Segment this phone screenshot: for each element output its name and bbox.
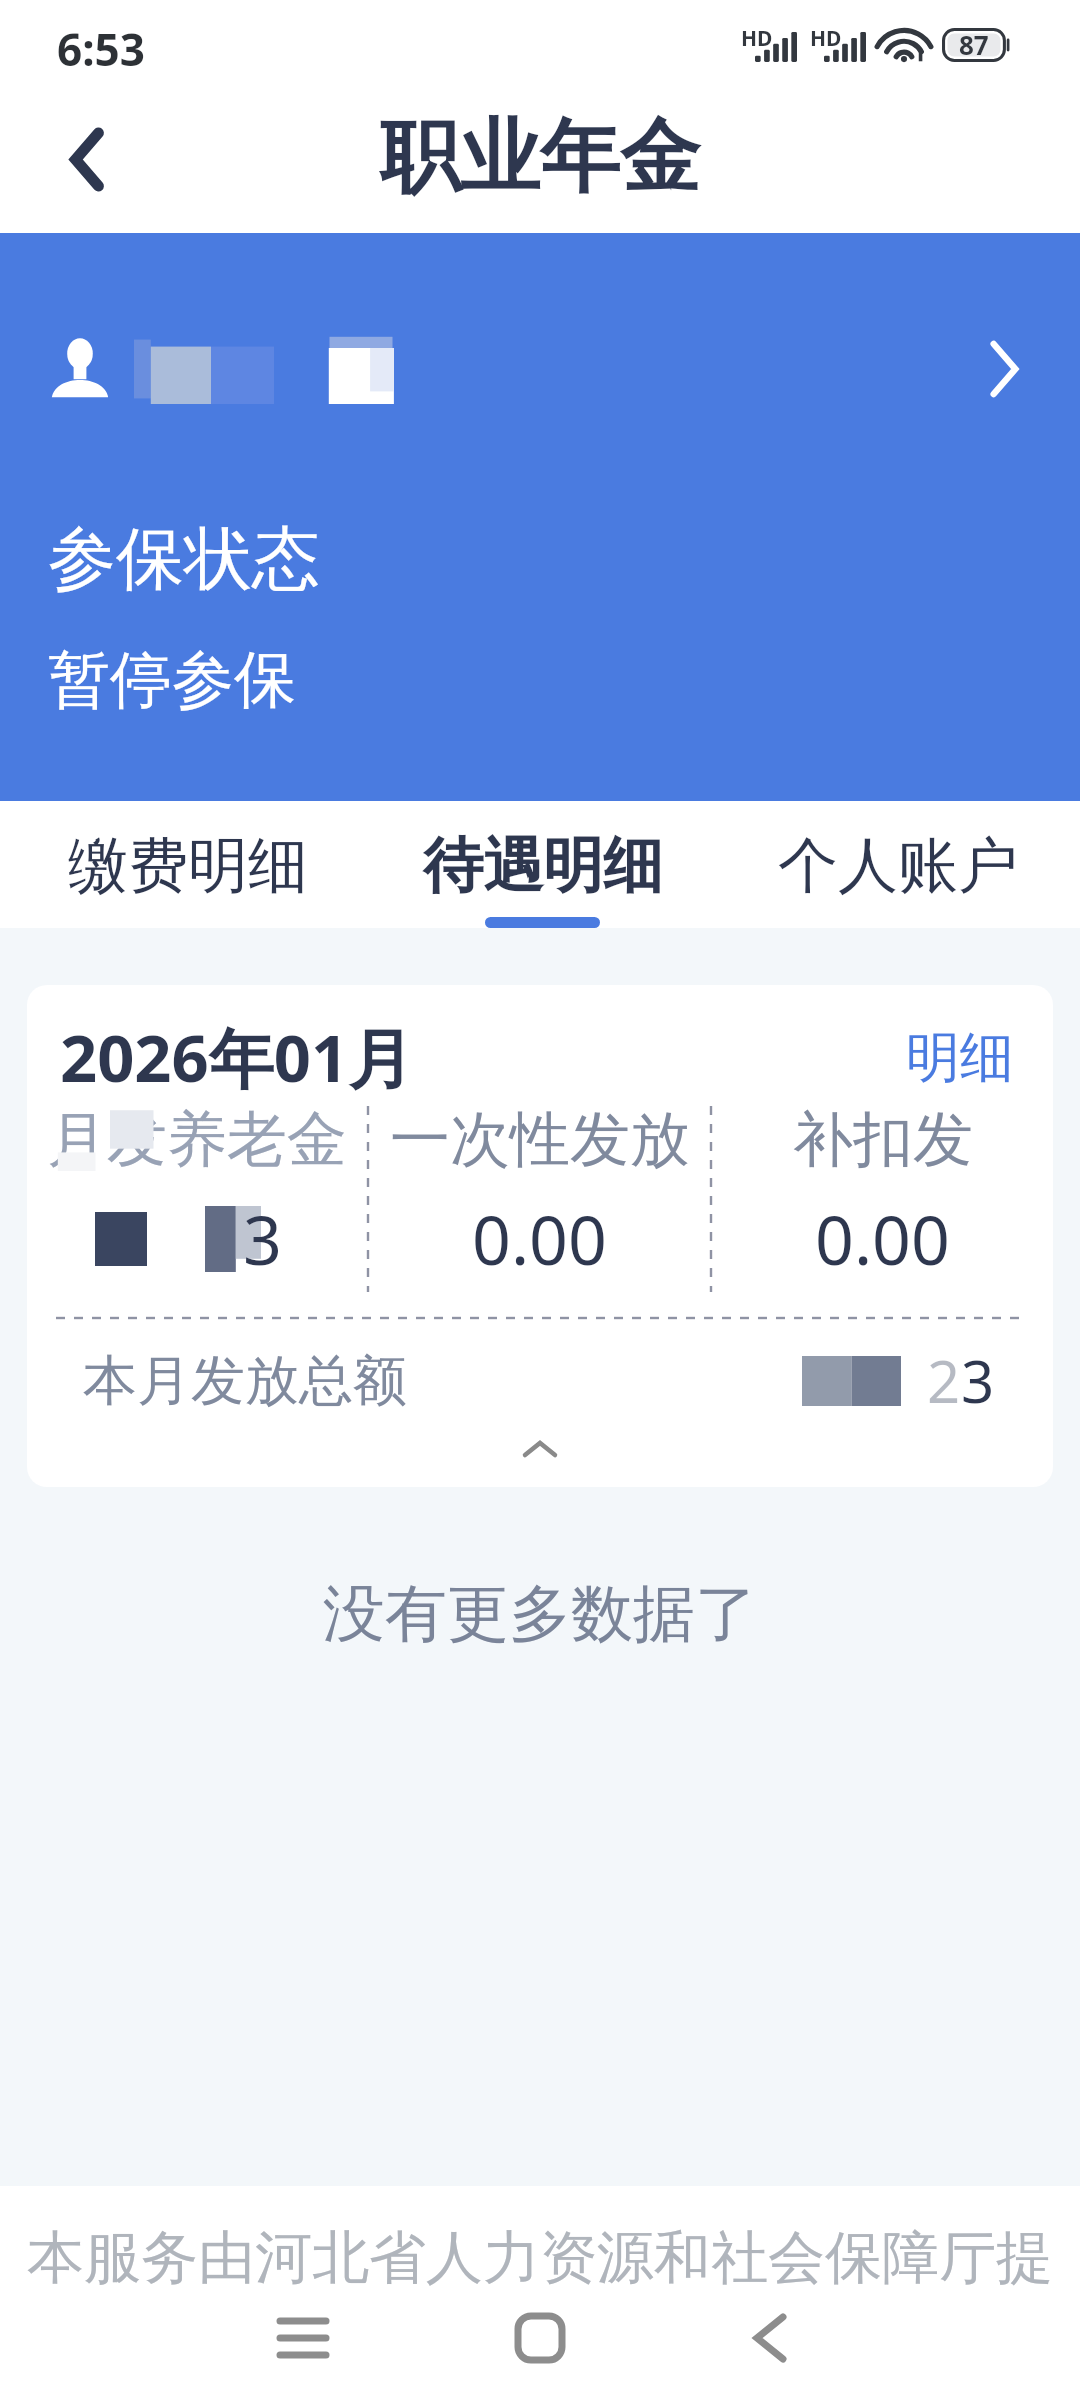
staticText: 暂停参保 xyxy=(48,641,296,719)
staticText: 本月发放总额 xyxy=(83,1347,407,1415)
staticText: 明细 xyxy=(906,1024,1014,1092)
staticText: 2026年01月 xyxy=(60,1013,414,1102)
staticText: 3 xyxy=(961,1341,995,1420)
staticText: 一次性发放 xyxy=(390,1102,690,1178)
staticText: 没有更多数据了 xyxy=(0,1575,1080,1653)
staticText: 参保状态 xyxy=(48,517,320,603)
staticText: 87 xyxy=(959,27,989,62)
button[interactable]: 返回 xyxy=(710,2278,830,2398)
staticText: 本服务由河北省人力资源和社会保障厅提 xyxy=(27,2222,1053,2294)
button[interactable]: 返回 xyxy=(32,104,142,214)
staticText: 6:53 xyxy=(57,19,145,79)
staticText: 0.00 xyxy=(815,1192,950,1285)
button[interactable]: 待遇明细 xyxy=(365,801,720,928)
staticText: 职业年金 xyxy=(380,107,700,208)
button[interactable]: 明细 xyxy=(900,1018,1020,1098)
staticText: 2 xyxy=(927,1341,961,1420)
staticText: 缴费明细 xyxy=(68,828,308,904)
button[interactable]: 个人账户 xyxy=(720,801,1075,928)
staticText: 0.00 xyxy=(472,1192,607,1285)
staticText: 3 xyxy=(243,1192,282,1285)
staticText: 月发养老金 xyxy=(47,1102,347,1178)
button[interactable]: 2026年01月 xyxy=(27,985,1053,1487)
staticText: HD xyxy=(741,24,773,53)
button[interactable]: 最近任务 xyxy=(243,2278,363,2398)
button[interactable]: 主页 xyxy=(480,2278,600,2398)
staticText: 待遇明细 xyxy=(423,828,663,904)
staticText: 个人账户 xyxy=(778,828,1018,904)
staticText: 补扣发 xyxy=(793,1102,973,1178)
staticText: HD xyxy=(810,24,842,53)
button[interactable]: 缴费明细 xyxy=(11,801,365,928)
button[interactable] xyxy=(48,265,1018,473)
